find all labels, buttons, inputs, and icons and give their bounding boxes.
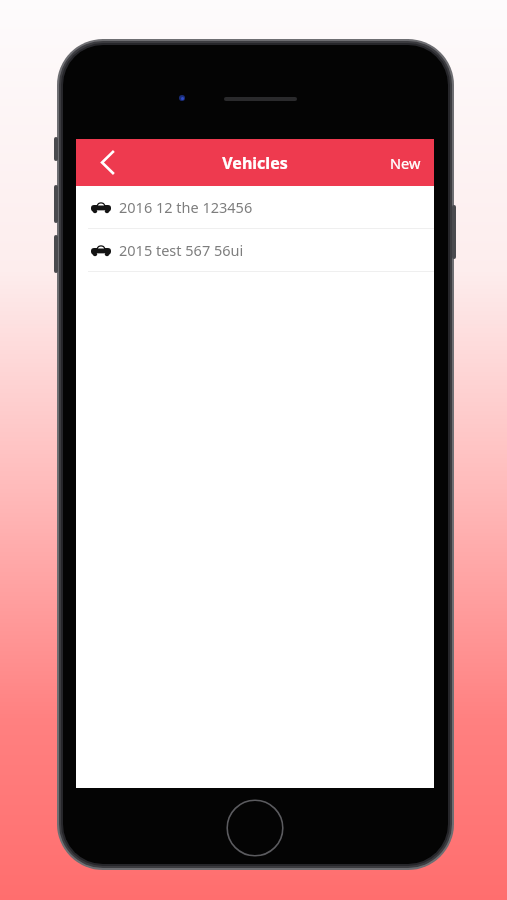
staticText: New <box>390 153 421 173</box>
staticText: 2016 12 the 123456 <box>119 197 253 217</box>
button[interactable]: New <box>377 139 434 186</box>
button[interactable]: Back <box>86 139 128 186</box>
staticText: 2015 test 567 56ui <box>119 240 244 260</box>
staticText: Vehicles <box>222 152 288 174</box>
button[interactable]: 2016 12 the 123456 <box>76 186 434 228</box>
button[interactable]: 2015 test 567 56ui <box>76 229 434 271</box>
